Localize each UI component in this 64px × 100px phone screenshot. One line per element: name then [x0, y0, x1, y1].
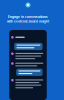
staticText: Engage in conversations	[8, 15, 48, 19]
staticText: with evidence-based insight	[7, 20, 49, 23]
